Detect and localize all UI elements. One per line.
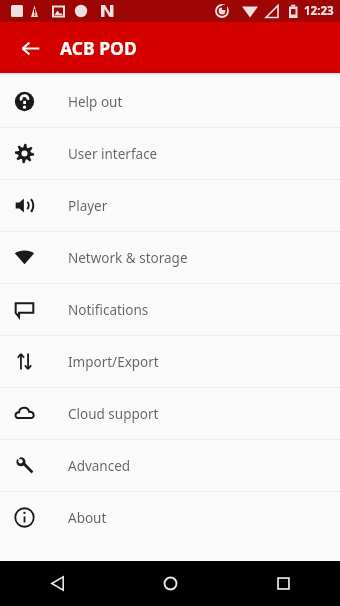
staticText: ACB POD <box>60 36 137 60</box>
staticText: User interface <box>68 145 158 163</box>
button[interactable]: About <box>0 492 340 543</box>
button[interactable]: Player <box>0 180 340 231</box>
staticText: 12:23 <box>304 3 334 19</box>
button[interactable]: Cloud support <box>0 388 340 439</box>
staticText: Notifications <box>68 301 149 319</box>
button[interactable]: Home <box>114 561 227 606</box>
staticText: Help out <box>68 93 123 111</box>
button[interactable]: Back <box>9 27 51 69</box>
staticText: Cloud support <box>68 405 159 423</box>
staticText: Import/Export <box>68 353 159 371</box>
staticText: Network & storage <box>68 249 188 267</box>
button[interactable]: Network & storage <box>0 232 340 283</box>
button[interactable]: Help out <box>0 76 340 127</box>
staticText: Advanced <box>68 457 131 475</box>
staticText: About <box>68 509 107 527</box>
staticText: Player <box>68 197 108 215</box>
button[interactable]: Notifications <box>0 284 340 335</box>
button[interactable]: Back <box>0 561 114 606</box>
button[interactable]: Import/Export <box>0 336 340 387</box>
button[interactable]: User interface <box>0 128 340 179</box>
button[interactable]: Recent apps <box>227 561 340 606</box>
button[interactable]: Advanced <box>0 440 340 491</box>
